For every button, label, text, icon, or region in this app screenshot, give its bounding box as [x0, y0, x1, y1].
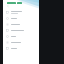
button[interactable]: Item icon	[3, 9, 39, 15]
other: Item icon	[6, 41, 9, 44]
button[interactable]: Item icon	[3, 39, 39, 45]
other: Item icon	[6, 11, 9, 14]
button[interactable]: Item icon	[3, 27, 39, 33]
other: Item icon	[6, 23, 9, 26]
other: Item icon	[6, 17, 9, 20]
button[interactable]: Item icon	[3, 21, 39, 27]
other: Item icon	[6, 47, 9, 50]
button[interactable]: Item icon	[3, 33, 39, 39]
button[interactable]	[7, 2, 22, 4]
button[interactable]: Item icon	[3, 45, 39, 51]
button[interactable]: Item icon	[3, 15, 39, 21]
other: Item icon	[6, 29, 9, 32]
button[interactable]: Back	[6, 4, 10, 8]
other: Item icon	[6, 35, 9, 38]
